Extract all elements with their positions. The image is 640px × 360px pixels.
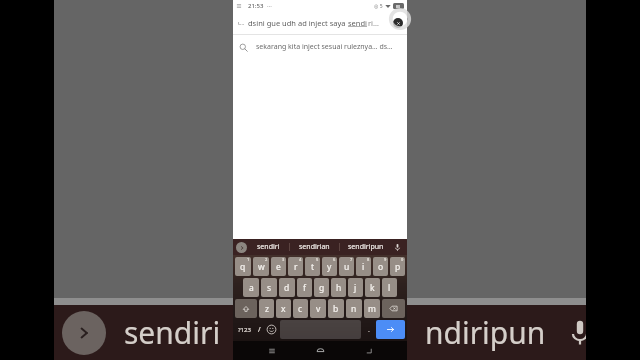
staticText: l bbox=[388, 282, 391, 294]
staticText: e bbox=[276, 261, 281, 273]
button[interactable]: q bbox=[235, 257, 251, 276]
button[interactable]: . bbox=[362, 319, 375, 340]
button[interactable] bbox=[235, 299, 257, 318]
staticText: g bbox=[319, 282, 325, 294]
staticText: 5 bbox=[316, 257, 319, 262]
button[interactable]: dsini gue udh ad inject saya bbox=[248, 18, 391, 28]
staticText: 2 bbox=[265, 257, 268, 262]
button[interactable] bbox=[382, 299, 405, 318]
staticText: ?123 bbox=[238, 326, 251, 334]
staticText: . bbox=[368, 325, 370, 335]
staticText: u bbox=[344, 261, 350, 273]
staticText: 6 bbox=[333, 257, 336, 262]
staticText: c bbox=[298, 303, 303, 315]
staticText: h bbox=[336, 282, 342, 294]
button[interactable]: o bbox=[373, 257, 388, 276]
staticText: v bbox=[316, 303, 321, 315]
staticText: f bbox=[303, 282, 306, 294]
button[interactable]: Home bbox=[311, 341, 330, 360]
staticText: o bbox=[378, 261, 384, 273]
staticText: w bbox=[258, 261, 265, 273]
button[interactable]: Recents bbox=[262, 341, 281, 360]
button[interactable]: r bbox=[288, 257, 303, 276]
staticText: b bbox=[333, 303, 339, 315]
button[interactable]: More suggestions bbox=[236, 242, 247, 253]
button[interactable]: sendiri bbox=[247, 239, 289, 255]
staticText: dsini gue udh ad inject saya bbox=[248, 18, 348, 28]
staticText: p bbox=[395, 261, 401, 273]
button[interactable]: l bbox=[382, 278, 397, 297]
button[interactable]: t bbox=[305, 257, 320, 276]
staticText: 4 bbox=[299, 257, 302, 262]
staticText: 0 bbox=[401, 257, 404, 262]
button[interactable]: w bbox=[253, 257, 269, 276]
staticText: n bbox=[351, 303, 357, 315]
staticText: ι… bbox=[238, 19, 245, 27]
staticText: / bbox=[258, 325, 261, 335]
staticText: z bbox=[265, 303, 269, 315]
staticText: 80 bbox=[396, 4, 401, 9]
staticText: ◎ 5 bbox=[374, 3, 383, 10]
button[interactable]: i bbox=[356, 257, 371, 276]
staticText: r bbox=[294, 261, 298, 273]
staticText: 3 bbox=[282, 257, 285, 262]
staticText: 21:53 bbox=[248, 2, 264, 10]
button[interactable]: sekarang kita inject sesuai ruleznya… ds… bbox=[233, 35, 407, 59]
button[interactable]: g bbox=[314, 278, 329, 297]
staticText: sendiri bbox=[124, 312, 221, 353]
button[interactable]: c bbox=[293, 299, 308, 318]
staticText: t bbox=[311, 261, 315, 273]
button[interactable]: / bbox=[255, 319, 264, 340]
staticText: sendirian bbox=[299, 242, 330, 252]
staticText: 7 bbox=[350, 257, 353, 262]
staticText: sekarang kita inject sesuai ruleznya… ds… bbox=[256, 42, 393, 52]
button[interactable]: m bbox=[364, 299, 380, 318]
button[interactable]: Clear search bbox=[393, 18, 403, 28]
staticText: s bbox=[267, 282, 272, 294]
button[interactable] bbox=[376, 320, 405, 339]
staticText: ri… bbox=[368, 18, 379, 28]
button[interactable]: j bbox=[348, 278, 363, 297]
button[interactable]: f bbox=[297, 278, 312, 297]
button[interactable]: d bbox=[279, 278, 295, 297]
staticText: ndiripun bbox=[425, 312, 546, 353]
button[interactable]: x bbox=[276, 299, 291, 318]
button[interactable]: b bbox=[328, 299, 344, 318]
staticText: k bbox=[370, 282, 375, 294]
staticText: 8 bbox=[367, 257, 370, 262]
button[interactable]: Back bbox=[359, 341, 378, 360]
button[interactable]: z bbox=[259, 299, 274, 318]
staticText: x bbox=[281, 303, 286, 315]
button[interactable]: ?123 bbox=[234, 319, 255, 340]
button[interactable]: Voice input bbox=[391, 239, 404, 255]
button[interactable]: u bbox=[339, 257, 354, 276]
button[interactable]: h bbox=[331, 278, 346, 297]
staticText: 9 bbox=[384, 257, 387, 262]
staticText: sendiripun bbox=[348, 242, 384, 252]
staticText: 1 bbox=[247, 257, 250, 262]
button[interactable]: e bbox=[271, 257, 286, 276]
staticText: i bbox=[362, 261, 365, 273]
button[interactable]: k bbox=[365, 278, 380, 297]
button[interactable]: a bbox=[243, 278, 259, 297]
staticText: sendiri bbox=[257, 242, 280, 252]
staticText: a bbox=[249, 282, 254, 294]
button[interactable]: p bbox=[390, 257, 405, 276]
staticText: ··· bbox=[267, 2, 272, 10]
staticText: j bbox=[354, 282, 357, 294]
staticText: sendi bbox=[348, 18, 368, 28]
button[interactable]: v bbox=[310, 299, 326, 318]
staticText: y bbox=[327, 261, 332, 273]
button[interactable]: Emoji bbox=[264, 319, 279, 340]
staticText: q bbox=[240, 261, 246, 273]
button[interactable]: s bbox=[261, 278, 277, 297]
staticText: d bbox=[284, 282, 290, 294]
button[interactable]: sendirian bbox=[290, 239, 339, 255]
button[interactable]: y bbox=[322, 257, 337, 276]
staticText: m bbox=[368, 303, 376, 315]
button[interactable]: n bbox=[346, 299, 362, 318]
button[interactable]: sendiripun bbox=[340, 239, 391, 255]
